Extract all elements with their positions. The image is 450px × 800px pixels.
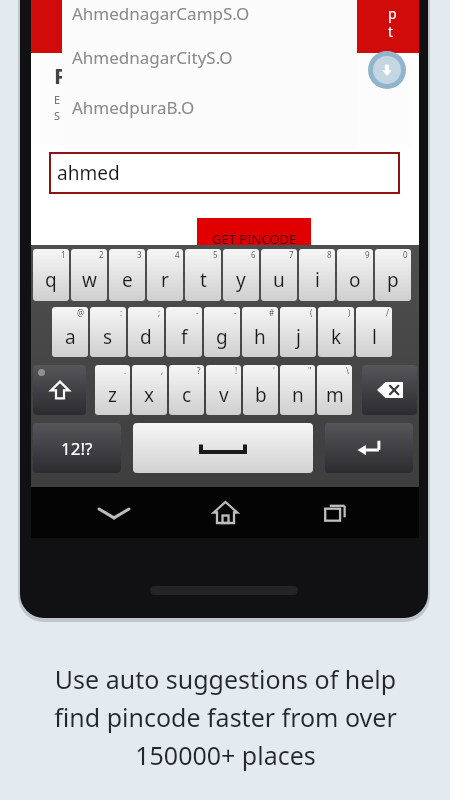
button[interactable]: . (95, 365, 130, 415)
staticText: \ (346, 365, 349, 376)
staticText: ) (348, 307, 351, 318)
staticText: GET PINCODE (212, 230, 297, 248)
button[interactable]: " (280, 365, 315, 415)
staticText: ! (235, 365, 238, 376)
button[interactable]: 3 (109, 249, 145, 301)
button[interactable]: Download (368, 51, 406, 89)
button[interactable]: Space (133, 423, 313, 473)
staticText: ? (197, 365, 201, 376)
staticText: 0 (403, 249, 408, 260)
button[interactable]: ? (169, 365, 204, 415)
button[interactable]: ( (280, 307, 316, 357)
button[interactable]: Home (197, 487, 253, 538)
staticText: b (255, 382, 267, 408)
staticText: " (308, 365, 312, 376)
staticText: - (196, 307, 199, 318)
staticText: 6 (251, 249, 256, 260)
button[interactable]: ' (243, 365, 278, 415)
staticText: d (140, 324, 152, 350)
button[interactable]: 6 (223, 249, 259, 301)
staticText: o (349, 267, 361, 293)
button[interactable]: GET PINCODE (197, 218, 311, 248)
button[interactable]: AhmednagarCityS.O (62, 32, 357, 82)
staticText: AhmedpuraB.O (72, 96, 195, 119)
staticText: t (388, 22, 394, 41)
button[interactable]: Recent apps (308, 487, 364, 538)
staticText: AhmednagarCampS.O (72, 2, 250, 25)
staticText: z (108, 382, 117, 408)
staticText: t (200, 267, 207, 293)
staticText: h (254, 324, 266, 350)
staticText: ( (310, 307, 313, 318)
staticText: P (54, 60, 68, 90)
button[interactable]: 1 (33, 249, 69, 301)
button[interactable]: @ (52, 307, 88, 357)
button[interactable]: AhmednagarCampS.O (62, 0, 357, 32)
staticText: 7 (289, 249, 294, 260)
staticText: g (216, 324, 228, 350)
staticText: l (372, 324, 377, 350)
staticText: S (54, 108, 61, 123)
staticText: / (386, 307, 389, 318)
button[interactable]: Shift (33, 365, 86, 415)
staticText: c (182, 382, 192, 408)
staticText: E (54, 92, 61, 107)
button[interactable]: : (90, 307, 126, 357)
staticText: ' (273, 365, 275, 376)
staticText: ahmed (57, 160, 120, 186)
button[interactable]: Enter (325, 423, 413, 473)
button[interactable]: Backspace (362, 365, 417, 415)
staticText: x (144, 382, 155, 408)
button[interactable]: \ (317, 365, 352, 415)
staticText: 8 (327, 249, 332, 260)
staticText: 3 (137, 249, 142, 260)
staticText: y (236, 267, 246, 293)
staticText: k (331, 324, 342, 350)
staticText: p (388, 4, 397, 23)
button[interactable]: / (356, 307, 392, 357)
button[interactable]: Back (86, 487, 142, 538)
staticText: j (296, 324, 301, 350)
staticText: 5 (213, 249, 218, 260)
staticText: m (326, 382, 344, 408)
staticText: s (103, 324, 113, 350)
button[interactable]: 4 (147, 249, 183, 301)
staticText: - (234, 307, 237, 318)
button[interactable]: 8 (299, 249, 335, 301)
button[interactable]: 2 (71, 249, 107, 301)
staticText: 9 (365, 249, 370, 260)
button[interactable]: - (204, 307, 240, 357)
staticText: 1 (61, 249, 66, 260)
staticText: @ (77, 307, 85, 318)
staticText: i (315, 267, 320, 293)
staticText: w (82, 267, 97, 293)
button[interactable]: , (132, 365, 167, 415)
button[interactable]: AhmedpuraB.O (62, 82, 357, 133)
button[interactable]: ; (128, 307, 164, 357)
staticText: e (122, 267, 133, 293)
staticText: , (161, 365, 164, 376)
staticText: 12!? (61, 437, 93, 460)
button[interactable]: 5 (185, 249, 221, 301)
staticText: p (387, 267, 399, 293)
staticText: # (269, 307, 275, 318)
staticText: 4 (175, 249, 180, 260)
staticText: ; (158, 307, 161, 318)
staticText: : (120, 307, 123, 318)
staticText: f (181, 324, 188, 350)
staticText: Use auto suggestions of help find pincod… (54, 662, 397, 772)
button[interactable]: 12!? (33, 423, 121, 473)
staticText: v (219, 382, 229, 408)
button[interactable]: # (242, 307, 278, 357)
button[interactable]: - (166, 307, 202, 357)
button[interactable]: ) (318, 307, 354, 357)
staticText: AhmednagarCityS.O (72, 46, 233, 69)
button[interactable]: ahmed (50, 153, 399, 193)
staticText: . (124, 365, 127, 376)
button[interactable]: 9 (337, 249, 373, 301)
staticText: r (161, 267, 169, 293)
staticText: a (65, 324, 76, 350)
button[interactable]: ! (206, 365, 241, 415)
button[interactable]: 0 (375, 249, 411, 301)
button[interactable]: 7 (261, 249, 297, 301)
